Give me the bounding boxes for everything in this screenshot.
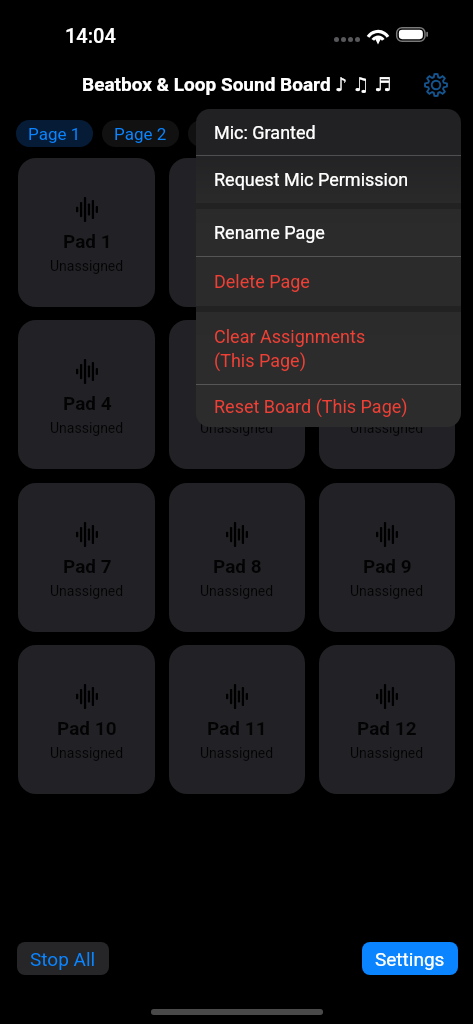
button[interactable]: Pad 10: [18, 645, 155, 794]
button[interactable]: Pad 12: [319, 645, 455, 794]
staticText: Pad 2: [213, 230, 262, 252]
staticText: Pad 5: [213, 392, 262, 414]
staticText: Unassigned: [350, 420, 424, 436]
button[interactable]: Reset Board (This Page): [196, 385, 461, 427]
staticText: Unassigned: [50, 258, 124, 274]
staticText: Rename Page: [214, 222, 325, 243]
button[interactable]: Page 3: [188, 120, 265, 147]
button[interactable]: Pad 5: [169, 320, 305, 469]
button[interactable]: Pad 6: [319, 320, 455, 469]
button[interactable]: Mic: Granted: [196, 109, 461, 155]
staticText: Delete Page: [214, 271, 310, 292]
button[interactable]: Pad 9: [319, 483, 455, 632]
button[interactable]: Rename Page: [196, 209, 461, 256]
button[interactable]: Pad 3: [319, 158, 455, 307]
staticText: Pad 1: [63, 230, 112, 252]
staticText: Stop All: [30, 948, 96, 970]
staticText: Unassigned: [50, 420, 124, 436]
staticText: Pad 6: [363, 392, 412, 414]
button[interactable]: Pad 7: [18, 483, 155, 632]
button[interactable]: Pad 8: [169, 483, 305, 632]
staticText: Pad 4: [63, 392, 112, 414]
staticText: Pad 8: [213, 555, 262, 577]
staticText: Pad 7: [63, 555, 112, 577]
staticText: Request Mic Permission: [214, 169, 409, 190]
button[interactable]: Pad 4: [18, 320, 155, 469]
staticText: Pad 12: [357, 717, 417, 739]
staticText: Unassigned: [50, 745, 124, 761]
staticText: Page 2: [114, 124, 167, 144]
staticText: Pad 9: [363, 555, 412, 577]
button[interactable]: Pad 2: [169, 158, 305, 307]
button[interactable]: Pad 11: [169, 645, 305, 794]
staticText: Reset Board (This Page): [214, 396, 408, 417]
staticText: Unassigned: [350, 583, 424, 599]
button[interactable]: Settings: [423, 72, 449, 98]
button[interactable]: Page 1: [16, 120, 93, 147]
button[interactable]: Clear Assignments: [196, 312, 461, 384]
staticText: Unassigned: [200, 420, 274, 436]
staticText: Unassigned: [50, 583, 124, 599]
staticText: Settings: [375, 948, 445, 970]
button[interactable]: Pad 1: [18, 158, 155, 307]
staticText: Clear Assignments: [214, 326, 366, 347]
staticText: Page 1: [28, 124, 81, 144]
staticText: Unassigned: [350, 745, 424, 761]
button[interactable]: Page 2: [102, 120, 179, 147]
staticText: Beatbox & Loop Sound Board ♪ ♫ ♬: [82, 73, 391, 95]
staticText: Unassigned: [200, 745, 274, 761]
staticText: Pad 10: [57, 717, 117, 739]
staticText: 14:04: [65, 24, 116, 47]
staticText: Page 3: [200, 124, 253, 144]
button[interactable]: Stop All: [17, 942, 109, 975]
staticText: Mic: Granted: [214, 122, 316, 143]
button[interactable]: Request Mic Permission: [196, 156, 461, 203]
staticText: Pad 11: [207, 717, 267, 739]
button[interactable]: Delete Page: [196, 257, 461, 306]
staticText: (This Page): [214, 350, 306, 371]
staticText: Unassigned: [200, 583, 274, 599]
button[interactable]: Settings: [362, 942, 458, 975]
